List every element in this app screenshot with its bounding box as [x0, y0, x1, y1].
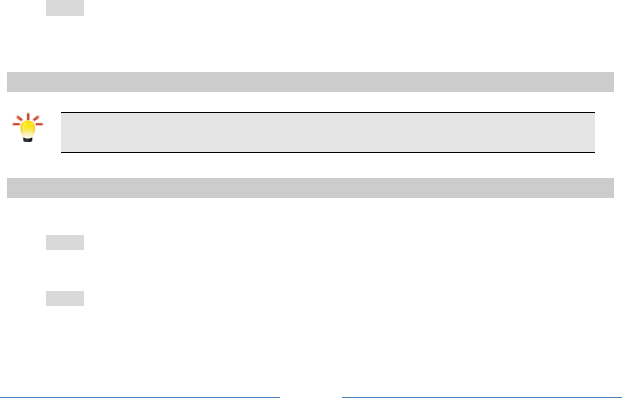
button[interactable]: Tip note [61, 112, 595, 153]
button[interactable]: Next page [342, 379, 622, 398]
button[interactable]: Previous page [0, 379, 280, 398]
other: Tip [10, 110, 46, 146]
